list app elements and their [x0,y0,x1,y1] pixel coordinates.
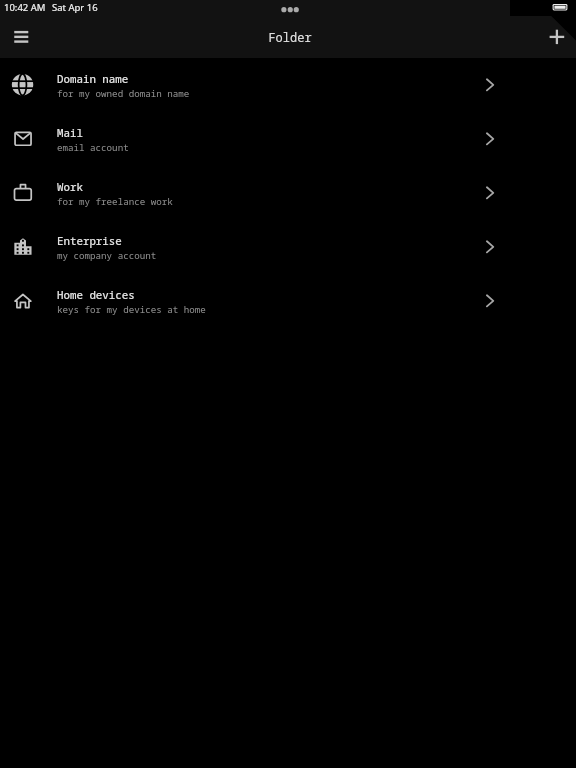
staticText: my company account [57,249,157,262]
staticText: for my owned domain name [57,87,190,100]
staticText: Home devices [57,287,135,302]
staticText: Folder [268,29,312,45]
button[interactable]: Menu [5,21,37,53]
staticText: Sat Apr 16 [52,1,98,14]
staticText: Enterprise [57,233,122,248]
button[interactable]: Mail [0,112,576,166]
staticText: Work [57,179,83,194]
button[interactable]: Home devices [0,274,576,328]
staticText: Domain name [57,71,129,86]
button[interactable]: Add [541,21,573,53]
staticText: keys for my devices at home [57,303,206,316]
staticText: email account [57,141,129,154]
staticText: for my freelance work [57,195,173,208]
button[interactable]: Domain name [0,58,576,112]
staticText: Mail [57,125,83,140]
staticText: 10:42 AM [4,1,46,14]
button[interactable]: Enterprise [0,220,576,274]
button[interactable]: Work [0,166,576,220]
